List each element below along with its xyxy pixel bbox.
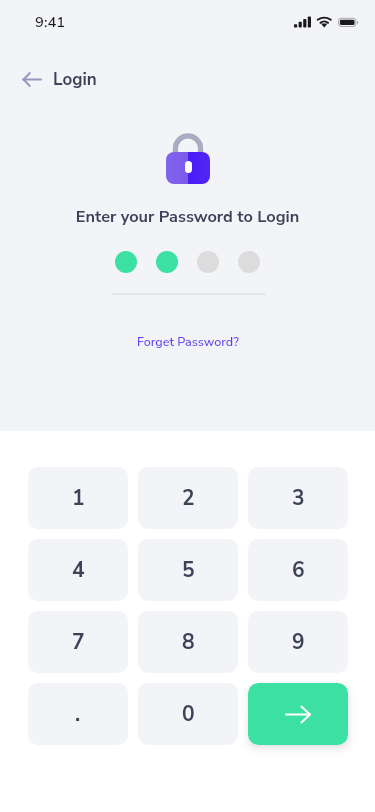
button[interactable]: .	[28, 683, 128, 745]
staticText: 4	[72, 556, 85, 585]
staticText: .	[75, 700, 81, 729]
button[interactable]: 9	[248, 611, 348, 673]
button[interactable]: 8	[138, 611, 238, 673]
staticText: 5	[182, 556, 195, 585]
staticText: 8	[182, 628, 195, 657]
staticText: 0	[182, 700, 195, 729]
staticText: 9:41	[35, 12, 66, 32]
button[interactable]: 3	[248, 467, 348, 529]
staticText: 2	[182, 484, 195, 513]
staticText: 3	[292, 484, 305, 513]
staticText: Forget Password?	[137, 333, 239, 350]
button[interactable]: 1	[28, 467, 128, 529]
button[interactable]: Back	[14, 61, 50, 97]
staticText: 9	[292, 628, 305, 657]
staticText: 1	[72, 484, 85, 513]
button[interactable]: 5	[138, 539, 238, 601]
button[interactable]: 7	[28, 611, 128, 673]
staticText: Enter your Password to Login	[0, 206, 375, 228]
staticText: Login	[53, 68, 97, 91]
button[interactable]: 4	[28, 539, 128, 601]
button[interactable]: Forget Password?	[125, 327, 251, 356]
button[interactable]: 0	[138, 683, 238, 745]
staticText: 6	[292, 556, 305, 585]
button[interactable]: Submit	[248, 683, 348, 745]
button[interactable]: 2	[138, 467, 238, 529]
staticText: 7	[72, 628, 85, 657]
button[interactable]: 6	[248, 539, 348, 601]
